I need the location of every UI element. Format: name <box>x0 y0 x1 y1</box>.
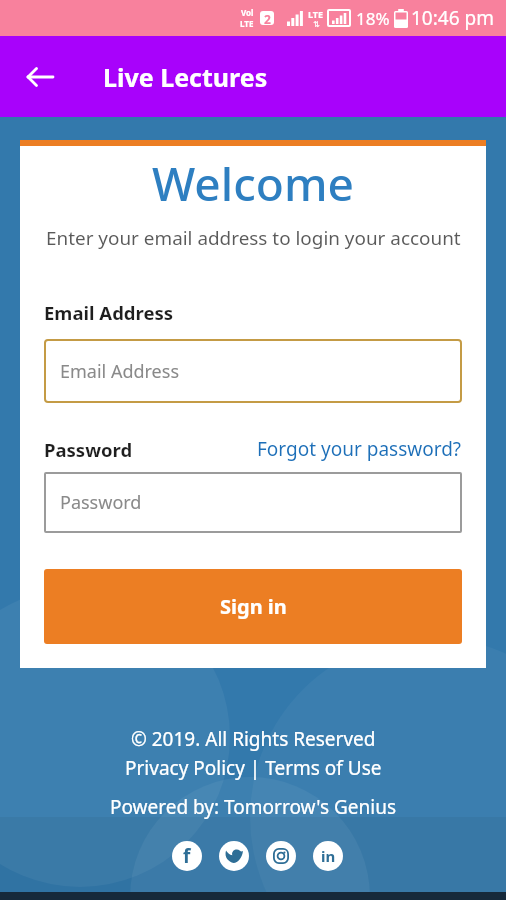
button[interactable]: f <box>172 841 202 871</box>
staticText: © 2019. All Rights Reserved <box>131 726 376 752</box>
staticText: Vol <box>241 7 254 18</box>
staticText: Password <box>60 490 142 515</box>
staticText: Live Lectures <box>103 60 268 94</box>
staticText: ⇅ <box>313 20 320 29</box>
staticText: 18% <box>356 7 390 30</box>
button[interactable] <box>266 841 296 871</box>
staticText: in <box>321 846 336 866</box>
staticText: f <box>183 843 191 869</box>
button[interactable] <box>219 841 249 871</box>
button[interactable]: Privacy Policy | Terms of Use <box>125 755 382 781</box>
button[interactable] <box>8 45 72 109</box>
staticText: Enter your email address to login your a… <box>46 225 461 251</box>
staticText: LTE <box>308 8 324 20</box>
button[interactable]: Password <box>44 472 462 533</box>
staticText: 10:46 pm <box>411 5 494 31</box>
staticText: Email Address <box>60 359 180 384</box>
button[interactable]: in <box>313 841 343 871</box>
button[interactable]: Email Address <box>44 339 462 403</box>
staticText: Welcome <box>152 152 354 215</box>
staticText: Email Address <box>44 300 174 325</box>
button[interactable]: Sign in <box>44 569 462 644</box>
staticText: LTE <box>240 18 254 29</box>
button[interactable]: Forgot your password? <box>257 436 462 462</box>
staticText: 2 <box>264 11 271 25</box>
staticText: Password <box>44 437 133 462</box>
staticText: Sign in <box>220 593 287 620</box>
staticText: Powered by: Tomorrow's Genius <box>110 794 396 820</box>
